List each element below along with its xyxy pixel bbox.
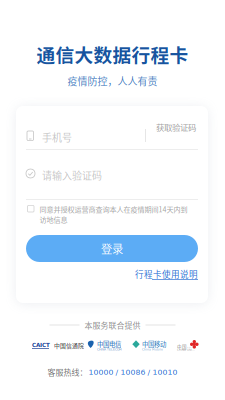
staticText: 同意并授权运营商查询本人在疫情期间14天内到访地信息 — [39, 204, 187, 225]
staticText: China Mobile — [142, 348, 163, 351]
staticText: 行程卡使用说明 — [135, 268, 198, 280]
staticText: 中国移动 — [142, 339, 166, 349]
staticText: 10000 / 10086 / 10010 — [88, 367, 177, 376]
button[interactable]: 登录 — [26, 235, 198, 262]
staticText: 登录 — [101, 240, 123, 257]
staticText: 通信大数据行程卡 — [36, 40, 188, 67]
staticText: 中国电信 — [97, 339, 121, 349]
staticText: CAICT — [32, 342, 50, 348]
staticText: 获取验证码 — [156, 121, 196, 133]
staticText: 疫情防控，人人有责 — [67, 74, 157, 88]
button[interactable]: 同意并授权运营商查询本人在疫情期间14天内到访地信息 — [27, 204, 207, 226]
staticText: 请输入验证码 — [42, 168, 102, 182]
staticText: CHINA UNICOM — [177, 348, 196, 351]
staticText: 手机号 — [42, 130, 72, 144]
staticText: 中国信通院 — [54, 341, 84, 350]
staticText: 中国联通 — [177, 343, 196, 350]
staticText: 本服务联合提供 — [84, 319, 140, 331]
staticText: 客服热线： — [47, 366, 87, 378]
staticText: CHINA TELECOM — [97, 348, 122, 351]
button[interactable]: 获取验证码 — [148, 106, 204, 148]
button[interactable]: 行程卡使用说明 — [108, 267, 198, 281]
